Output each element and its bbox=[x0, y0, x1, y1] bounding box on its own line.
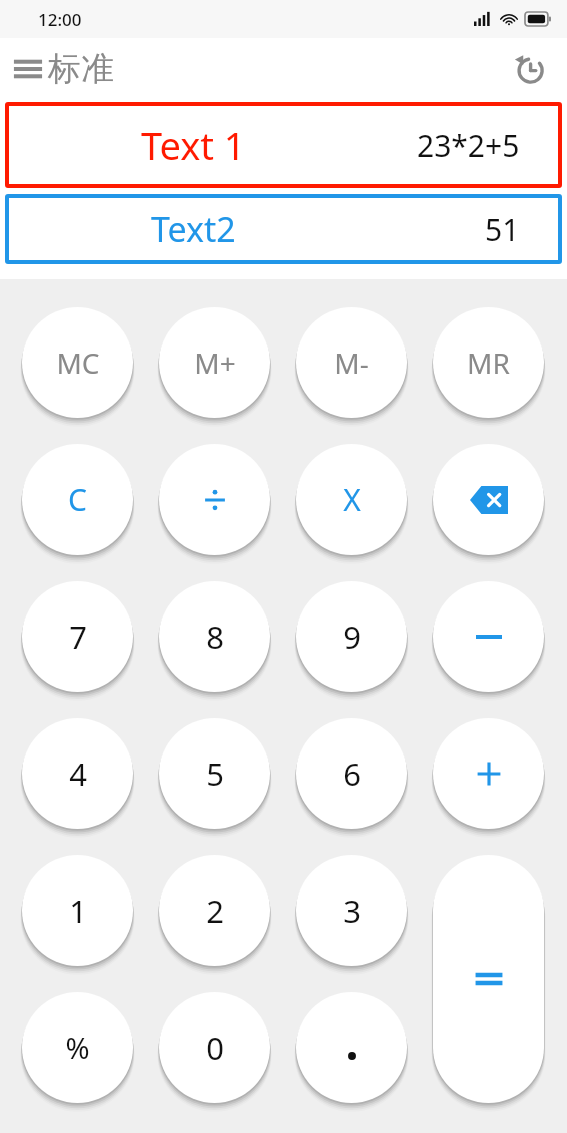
button[interactable]: 0 bbox=[159, 992, 270, 1103]
button[interactable]: MR bbox=[433, 307, 544, 418]
button[interactable]: Minus bbox=[433, 581, 544, 692]
staticText: 1 bbox=[69, 890, 87, 932]
button[interactable]: C bbox=[22, 444, 133, 555]
staticText: 9 bbox=[343, 616, 361, 658]
staticText: 6 bbox=[343, 753, 361, 795]
button[interactable]: Equals bbox=[433, 855, 544, 1103]
button[interactable]: M- bbox=[296, 307, 407, 418]
button[interactable]: Plus bbox=[433, 718, 544, 829]
button[interactable]: % bbox=[22, 992, 133, 1103]
button[interactable]: M+ bbox=[159, 307, 270, 418]
button[interactable]: 1 bbox=[22, 855, 133, 966]
staticText: 23*2+5 bbox=[417, 125, 520, 166]
staticText: X bbox=[343, 479, 361, 520]
button[interactable]: X bbox=[296, 444, 407, 555]
button[interactable]: 2 bbox=[159, 855, 270, 966]
button[interactable]: 5 bbox=[159, 718, 270, 829]
staticText: 51 bbox=[485, 209, 520, 250]
button[interactable]: History bbox=[509, 49, 549, 89]
button[interactable]: Menu bbox=[12, 48, 114, 90]
button[interactable]: 4 bbox=[22, 718, 133, 829]
staticText: MC bbox=[56, 344, 100, 382]
staticText: 标准 bbox=[48, 48, 114, 90]
other: Menu bbox=[12, 56, 44, 82]
button[interactable]: Backspace bbox=[433, 444, 544, 555]
staticText: 0 bbox=[206, 1027, 224, 1069]
staticText: 2 bbox=[206, 890, 224, 932]
staticText: 7 bbox=[69, 616, 87, 658]
staticText: M+ bbox=[194, 344, 236, 382]
button[interactable]: Divide bbox=[159, 444, 270, 555]
button[interactable]: 6 bbox=[296, 718, 407, 829]
button[interactable]: Text2 bbox=[5, 194, 562, 264]
staticText: 4 bbox=[69, 753, 87, 795]
staticText: % bbox=[65, 1028, 90, 1067]
button[interactable]: 3 bbox=[296, 855, 407, 966]
button[interactable]: Decimal point bbox=[296, 992, 407, 1103]
button[interactable]: 9 bbox=[296, 581, 407, 692]
button[interactable]: 7 bbox=[22, 581, 133, 692]
button[interactable]: 8 bbox=[159, 581, 270, 692]
staticText: MR bbox=[467, 344, 510, 382]
staticText: 12:00 bbox=[38, 8, 82, 31]
staticText: 5 bbox=[206, 753, 224, 795]
staticText: 3 bbox=[343, 890, 361, 932]
staticText: Text2 bbox=[151, 206, 236, 252]
button[interactable]: MC bbox=[22, 307, 133, 418]
staticText: M- bbox=[334, 344, 369, 382]
staticText: 8 bbox=[206, 616, 224, 658]
staticText: Text 1 bbox=[141, 119, 246, 171]
staticText: C bbox=[68, 479, 87, 520]
button[interactable]: Text 1 bbox=[5, 102, 562, 188]
